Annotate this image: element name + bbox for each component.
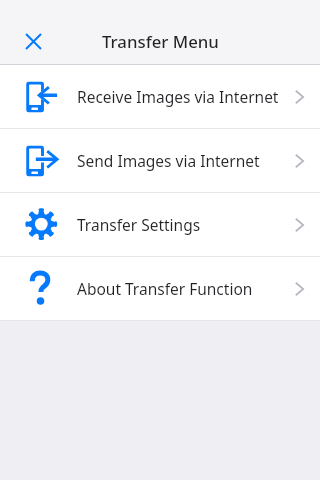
staticText: About Transfer Function xyxy=(77,278,253,299)
staticText: Receive Images via Internet xyxy=(77,86,279,107)
button[interactable]: About Transfer Function xyxy=(0,257,320,320)
button[interactable]: Receive Images via Internet xyxy=(0,65,320,128)
button[interactable]: Close xyxy=(18,26,48,56)
staticText: Transfer Menu xyxy=(102,30,219,53)
button[interactable]: Transfer Settings xyxy=(0,193,320,256)
button[interactable]: Send Images via Internet xyxy=(0,129,320,192)
staticText: Transfer Settings xyxy=(77,214,201,235)
staticText: Send Images via Internet xyxy=(77,150,260,171)
